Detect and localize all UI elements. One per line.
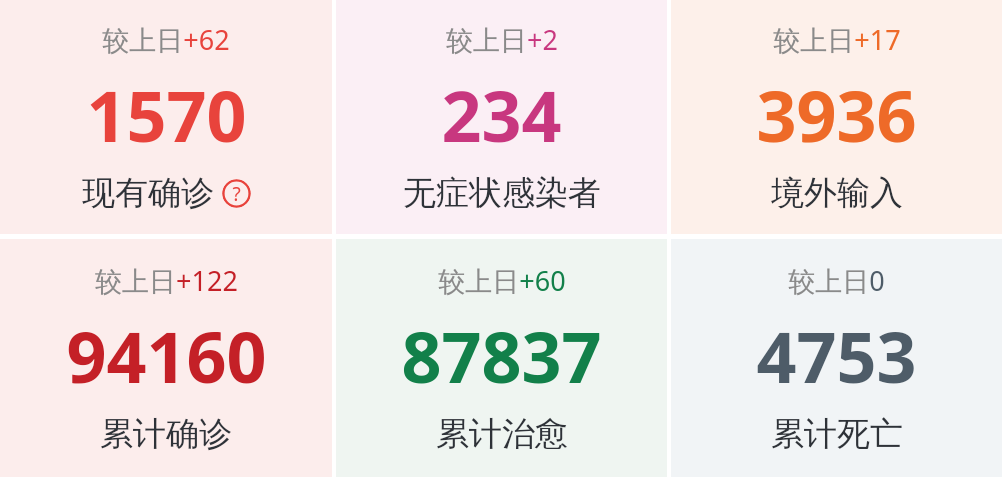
button[interactable]: 较上日+62 (0, 0, 332, 234)
staticText: ? (232, 181, 241, 207)
staticText: 94160 (66, 308, 267, 403)
button[interactable]: 帮助说明 (222, 179, 251, 208)
staticText: 较上日+2 (446, 21, 558, 58)
staticText: 较上日+17 (773, 21, 901, 58)
button[interactable]: 较上日0 (671, 239, 1002, 477)
staticText: 累计死亡 (771, 413, 903, 455)
button[interactable]: 较上日+60 (336, 239, 667, 477)
button[interactable]: 较上日+2 (336, 0, 667, 234)
staticText: 累计确诊 (100, 413, 232, 455)
staticText: 较上日0 (788, 262, 885, 299)
button[interactable]: 较上日+17 (671, 0, 1002, 234)
staticText: 较上日+122 (95, 262, 238, 299)
staticText: 较上日+60 (438, 262, 566, 299)
staticText: 3936 (756, 67, 917, 162)
staticText: 无症状感染者 (403, 172, 601, 214)
staticText: 1570 (86, 67, 247, 162)
staticText: 87837 (401, 308, 602, 403)
staticText: 境外输入 (771, 172, 903, 214)
staticText: 较上日+62 (102, 21, 230, 58)
staticText: 234 (441, 67, 562, 162)
staticText: 累计治愈 (436, 413, 568, 455)
button[interactable]: 较上日+122 (0, 239, 332, 477)
staticText: 现有确诊 (82, 172, 214, 214)
staticText: 4753 (756, 308, 917, 403)
